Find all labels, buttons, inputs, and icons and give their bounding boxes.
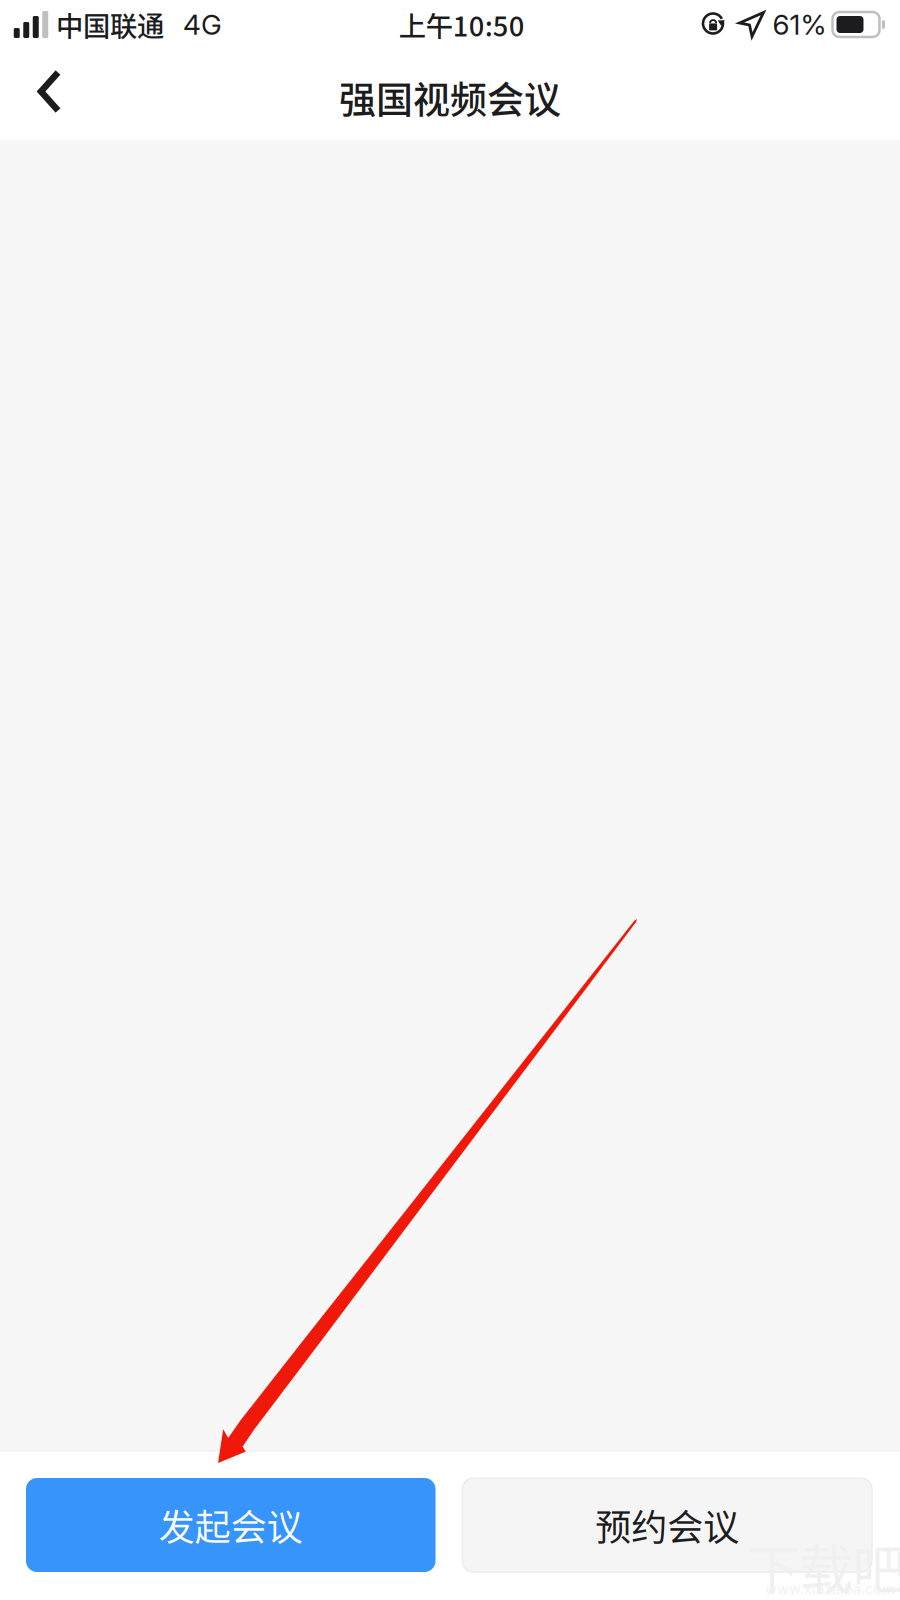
staticText: 4G xyxy=(183,8,222,41)
staticText: 下载吧 xyxy=(746,1527,900,1600)
staticText: 预约会议 xyxy=(595,1499,739,1551)
button[interactable]: Back xyxy=(0,49,93,146)
staticText: 强国视频会议 xyxy=(339,71,561,124)
staticText: 61% xyxy=(772,8,826,41)
button[interactable]: 预约会议 xyxy=(462,1478,872,1572)
staticText: 上午10:50 xyxy=(399,5,525,44)
button[interactable]: 发起会议 xyxy=(26,1478,435,1572)
staticText: 发起会议 xyxy=(159,1499,303,1551)
staticText: 中国联通 xyxy=(56,5,164,44)
staticText: www.xiazaiba.com xyxy=(765,1580,895,1598)
